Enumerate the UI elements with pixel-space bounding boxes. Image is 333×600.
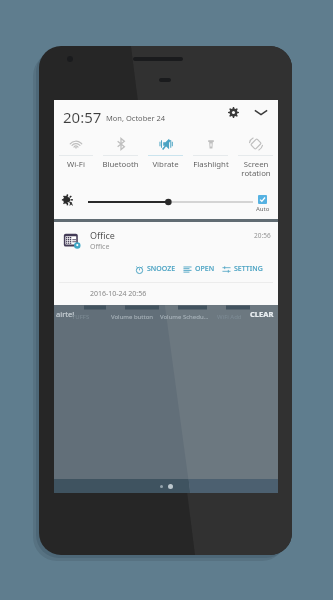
button[interactable]: Wi-Fi (54, 132, 98, 182)
staticText: Vibrate (152, 159, 179, 170)
staticText: Volume button (111, 313, 153, 321)
staticText: Volume Schedu... (160, 313, 209, 321)
button[interactable]: CLEAR (250, 309, 274, 319)
button[interactable]: Bluetooth (98, 132, 143, 182)
staticText: Mon, October 24 (106, 113, 166, 123)
staticText: SETTING (234, 264, 263, 274)
staticText: SNOOZE (147, 264, 176, 274)
staticText: Wi-Fi (67, 159, 85, 170)
button[interactable]: Vibrate (143, 132, 188, 182)
staticText: Bluetooth (102, 159, 139, 170)
button[interactable]: Settings (223, 102, 243, 122)
button[interactable]: Brightness (88, 196, 253, 208)
staticText: Office (90, 229, 115, 241)
staticText: WiFi Add (217, 313, 242, 321)
staticText: TUFFS (72, 313, 90, 321)
button[interactable]: Office (54, 222, 278, 258)
button[interactable]: Flashlight (188, 132, 233, 182)
button[interactable]: OPEN (182, 261, 216, 277)
staticText: airtel (56, 309, 75, 319)
staticText: Flashlight (193, 159, 229, 170)
button[interactable]: SNOOZE (134, 261, 177, 277)
button[interactable]: Screen rotation (233, 132, 278, 182)
staticText: Screen rotation (241, 159, 271, 178)
staticText: Auto (256, 205, 270, 213)
button[interactable]: SETTING (221, 261, 264, 277)
staticText: Office (90, 242, 110, 252)
button[interactable]: Collapse panel (251, 102, 271, 122)
staticText: 20:57 (63, 107, 102, 127)
staticText: OPEN (195, 264, 215, 274)
staticText: 20:56 (254, 231, 271, 240)
staticText: 2016-10-24 20:56 (90, 289, 147, 299)
button[interactable]: Auto (253, 195, 272, 213)
